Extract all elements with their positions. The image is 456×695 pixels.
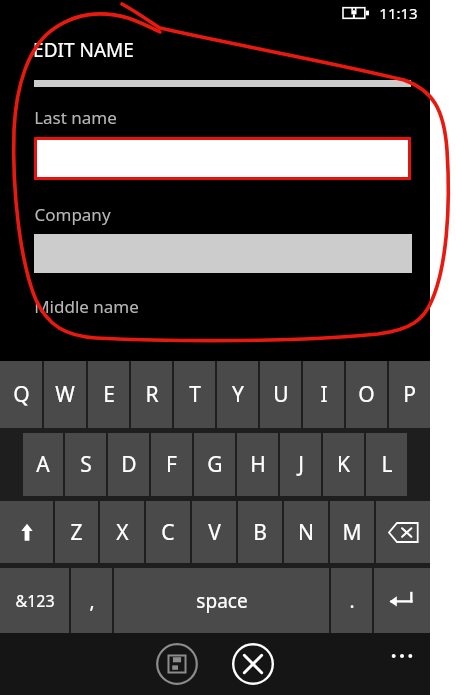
- button[interactable]: G: [194, 433, 235, 496]
- button[interactable]: space: [114, 568, 329, 633]
- button[interactable]: Y: [217, 361, 258, 428]
- button[interactable]: &123: [0, 568, 69, 633]
- staticText: F: [166, 450, 177, 479]
- button[interactable]: H: [237, 433, 278, 496]
- button[interactable]: Q: [0, 361, 42, 428]
- staticText: Last name: [34, 106, 117, 129]
- button[interactable]: J: [280, 433, 321, 496]
- staticText: Company: [34, 203, 111, 226]
- staticText: L: [381, 450, 393, 479]
- staticText: N: [298, 518, 314, 547]
- button[interactable]: .: [331, 568, 372, 633]
- button[interactable]: V: [192, 501, 236, 563]
- staticText: P: [403, 380, 416, 409]
- staticText: ,: [89, 588, 95, 614]
- staticText: &123: [15, 590, 55, 612]
- button[interactable]: M: [330, 501, 374, 563]
- staticText: J: [298, 450, 304, 479]
- staticText: I: [320, 380, 328, 409]
- button[interactable]: X: [100, 501, 144, 563]
- staticText: 11:13: [379, 3, 418, 23]
- staticText: X: [116, 518, 129, 547]
- staticText: EDIT NAME: [33, 37, 134, 63]
- button[interactable]: L: [366, 433, 407, 496]
- staticText: K: [337, 450, 350, 479]
- button[interactable]: N: [284, 501, 328, 563]
- button[interactable]: More options: [382, 636, 422, 676]
- staticText: T: [189, 380, 201, 409]
- staticText: A: [36, 450, 50, 479]
- staticText: Q: [13, 380, 30, 409]
- staticText: W: [55, 380, 75, 409]
- button[interactable]: Backspace: [376, 501, 430, 563]
- staticText: U: [273, 380, 289, 409]
- staticText: C: [161, 518, 175, 547]
- button[interactable]: D: [108, 433, 149, 496]
- staticText: V: [208, 518, 221, 547]
- staticText: Z: [70, 518, 83, 547]
- button[interactable]: E: [88, 361, 129, 428]
- staticText: Y: [232, 380, 244, 409]
- staticText: G: [207, 450, 223, 479]
- button[interactable]: F: [151, 433, 192, 496]
- staticText: space: [196, 588, 248, 614]
- staticText: E: [103, 380, 115, 409]
- staticText: O: [358, 380, 375, 409]
- staticText: M: [342, 518, 362, 547]
- button[interactable]: A: [23, 433, 63, 496]
- staticText: Middle name: [34, 295, 139, 318]
- button[interactable]: R: [131, 361, 172, 428]
- button[interactable]: I: [303, 361, 344, 428]
- staticText: R: [145, 380, 159, 409]
- staticText: S: [80, 450, 92, 479]
- button[interactable]: Save: [153, 640, 201, 688]
- button[interactable]: P: [389, 361, 430, 428]
- button[interactable]: ,: [71, 568, 112, 633]
- button[interactable]: Cancel: [229, 640, 277, 688]
- button[interactable]: C: [146, 501, 190, 563]
- button[interactable]: O: [346, 361, 387, 428]
- button[interactable]: Z: [55, 501, 98, 563]
- staticText: B: [253, 518, 267, 547]
- button[interactable]: B: [238, 501, 282, 563]
- staticText: .: [349, 588, 355, 614]
- staticText: H: [250, 450, 266, 479]
- button[interactable]: U: [260, 361, 301, 428]
- button[interactable]: Shift: [0, 501, 53, 563]
- button[interactable]: S: [65, 433, 106, 496]
- button[interactable]: K: [323, 433, 364, 496]
- button[interactable]: Enter: [374, 568, 430, 633]
- staticText: D: [121, 450, 137, 479]
- button[interactable]: W: [44, 361, 86, 428]
- button[interactable]: T: [174, 361, 215, 428]
